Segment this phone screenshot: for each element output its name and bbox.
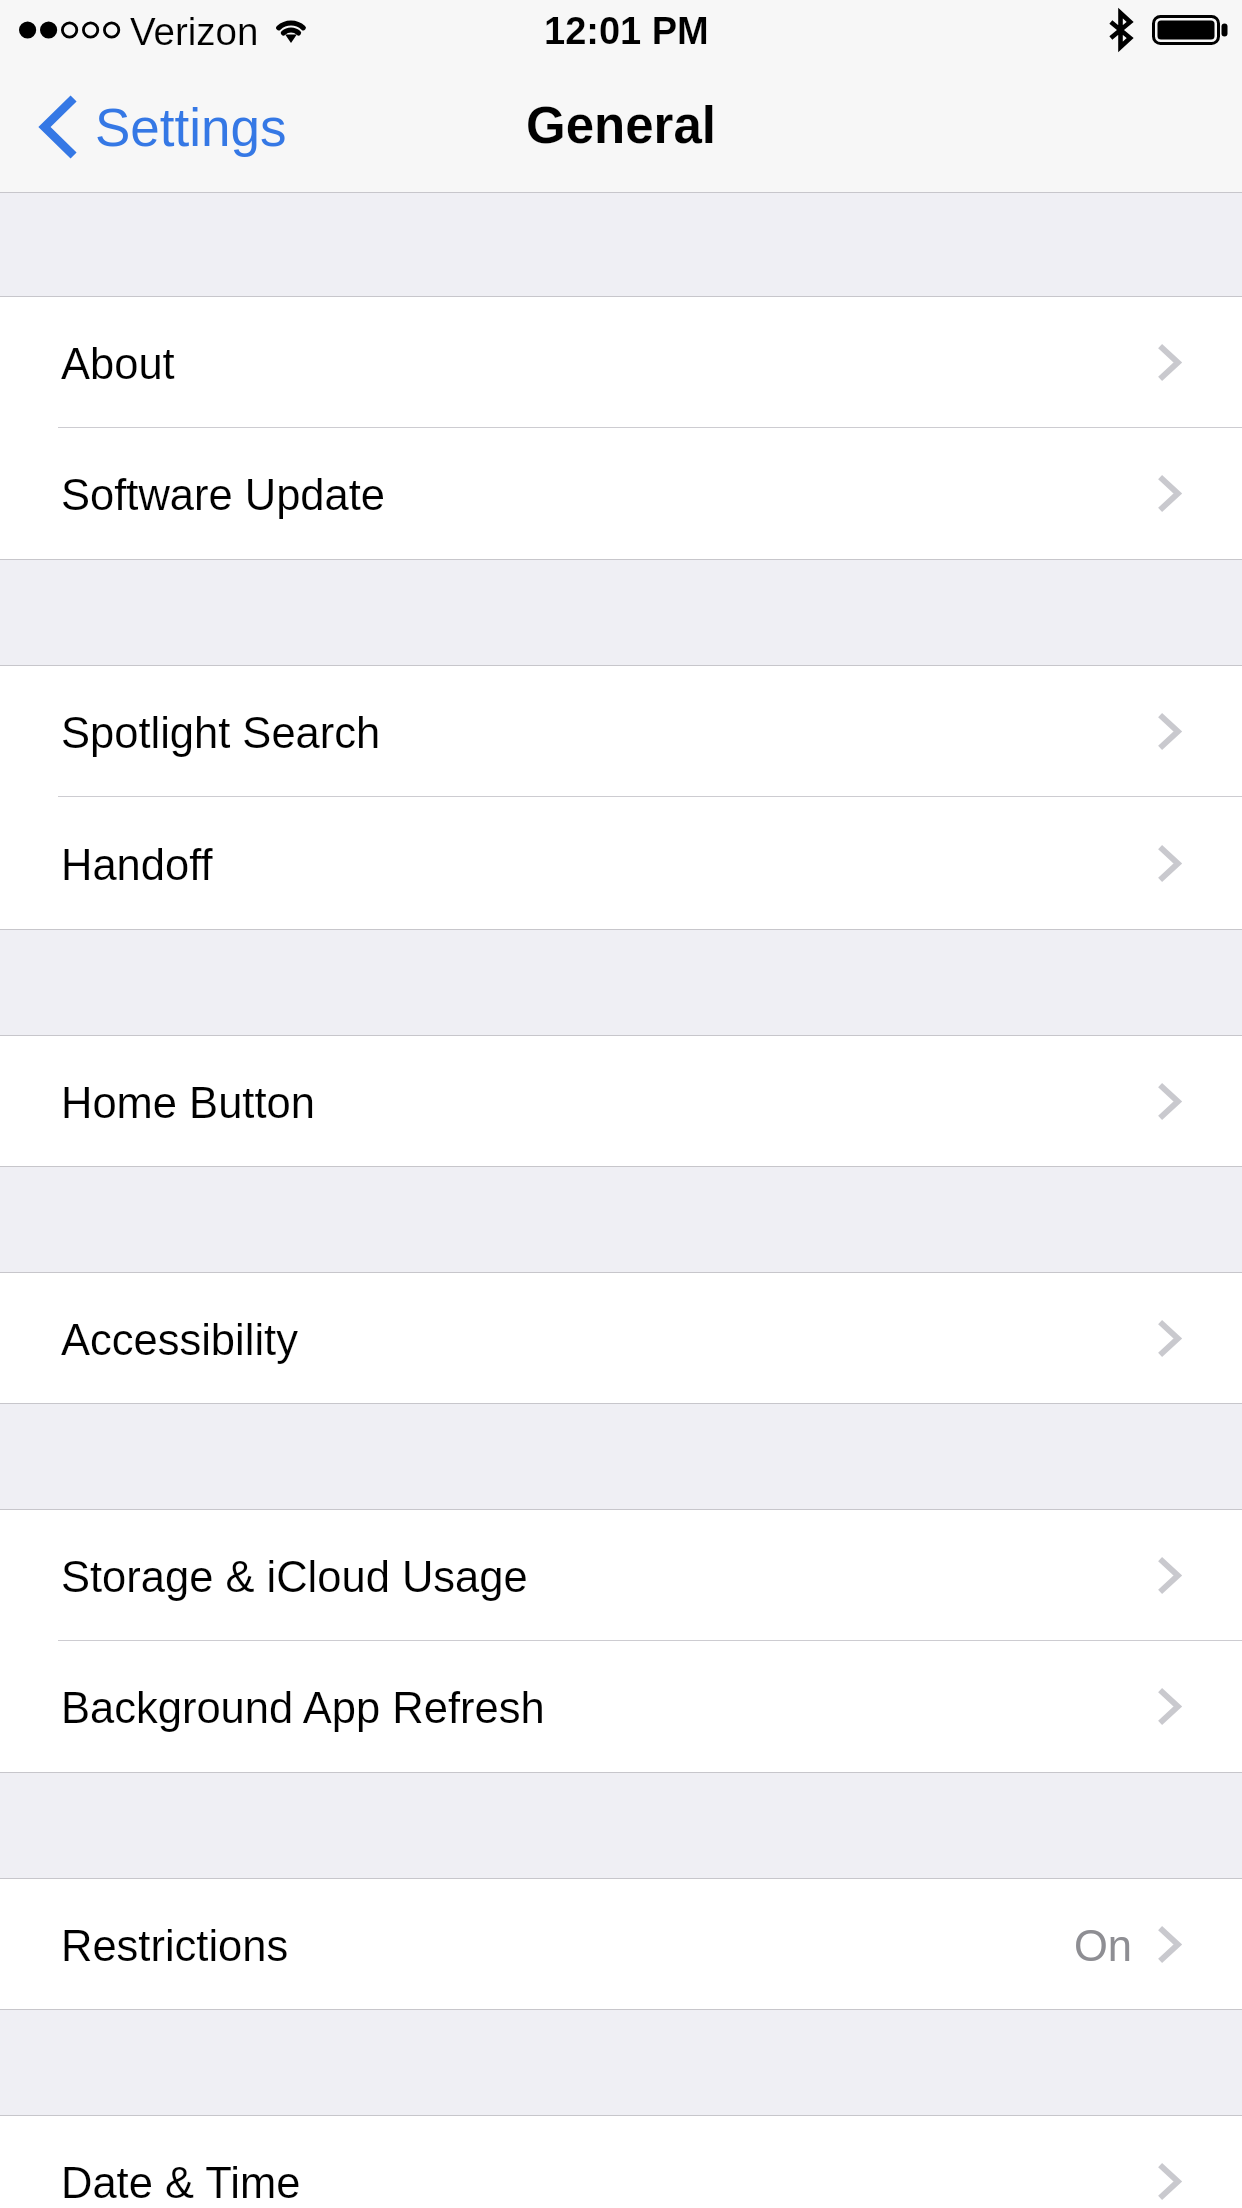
staticText: General: [526, 97, 716, 154]
other: Battery: [1152, 15, 1228, 45]
staticText: 12:01 PM: [544, 10, 709, 52]
button[interactable]: Restrictions: [0, 1879, 1242, 2009]
button[interactable]: About: [0, 297, 1242, 428]
staticText: Background App Refresh: [61, 1684, 545, 1733]
staticText: Verizon: [130, 10, 259, 53]
staticText: On: [1074, 1922, 1133, 1971]
staticText: Accessibility: [61, 1316, 298, 1365]
button[interactable]: Spotlight Search: [0, 666, 1242, 797]
button[interactable]: Background App Refresh: [0, 1641, 1242, 1772]
other: Back: [38, 96, 77, 158]
staticText: About: [61, 340, 175, 389]
staticText: Settings: [95, 98, 287, 157]
button[interactable]: Back: [0, 86, 313, 168]
button[interactable]: Home Button: [0, 1036, 1242, 1166]
staticText: Spotlight Search: [61, 709, 381, 758]
staticText: Storage & iCloud Usage: [61, 1553, 528, 1602]
staticText: Home Button: [61, 1079, 315, 1128]
button[interactable]: Software Update: [0, 428, 1242, 559]
staticText: Software Update: [61, 471, 386, 520]
button[interactable]: Accessibility: [0, 1273, 1242, 1403]
staticText: Handoff: [61, 841, 213, 890]
button[interactable]: Date & Time: [0, 2116, 1242, 2208]
staticText: Date & Time: [61, 2159, 301, 2208]
other: Bluetooth: [1110, 13, 1131, 47]
button[interactable]: Handoff: [0, 797, 1242, 929]
staticText: Restrictions: [61, 1922, 289, 1971]
button[interactable]: Storage & iCloud Usage: [0, 1510, 1242, 1641]
